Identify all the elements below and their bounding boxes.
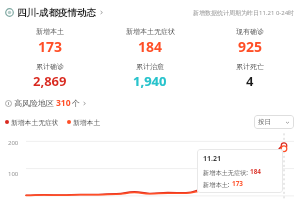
button[interactable]: 现有确诊: [200, 27, 300, 56]
staticText: 184: [250, 167, 261, 176]
staticText: 310: [56, 97, 71, 109]
button[interactable]: 累计确诊: [0, 62, 100, 90]
button[interactable]: 新增本土无症状: [100, 27, 200, 56]
button[interactable]: 累计治愈: [100, 62, 200, 90]
staticText: 新增本土: [36, 27, 64, 36]
staticText: 新增本土无症状: [11, 118, 59, 127]
staticText: 新增本土: [73, 118, 101, 127]
staticText: 4: [246, 72, 254, 90]
staticText: 高风险地区: [14, 98, 54, 108]
button[interactable]: 按日: [254, 115, 294, 129]
staticText: 新增本土无症状:: [203, 168, 250, 176]
button[interactable]: 高风险地区: [3, 96, 89, 110]
staticText: 184: [138, 37, 163, 56]
button[interactable]: 新增本土: [0, 27, 100, 56]
staticText: 按日: [258, 118, 271, 126]
staticText: 新增本土无症状: [126, 27, 175, 36]
button[interactable]: 四川-成都疫情动态: [4, 5, 105, 20]
staticText: 2,869: [33, 72, 67, 90]
staticText: 925: [238, 37, 263, 56]
staticText: 173: [232, 179, 243, 188]
staticText: 200: [8, 139, 19, 147]
staticText: 100: [8, 170, 19, 178]
staticText: 1,940: [133, 72, 167, 90]
staticText: 现有确诊: [236, 27, 264, 36]
staticText: 累计治愈: [136, 62, 164, 71]
staticText: 新增本土:: [203, 180, 232, 188]
button[interactable]: 累计死亡: [200, 62, 300, 90]
staticText: 累计确诊: [36, 62, 64, 71]
staticText: 个: [72, 98, 80, 108]
staticText: 11.21: [203, 154, 221, 164]
staticText: 173: [38, 37, 63, 56]
staticText: 累计死亡: [236, 62, 264, 71]
staticText: 新增数据统计周期为昨日11.21 0-24时: [193, 9, 295, 17]
staticText: 四川-成都疫情动态: [17, 6, 97, 19]
